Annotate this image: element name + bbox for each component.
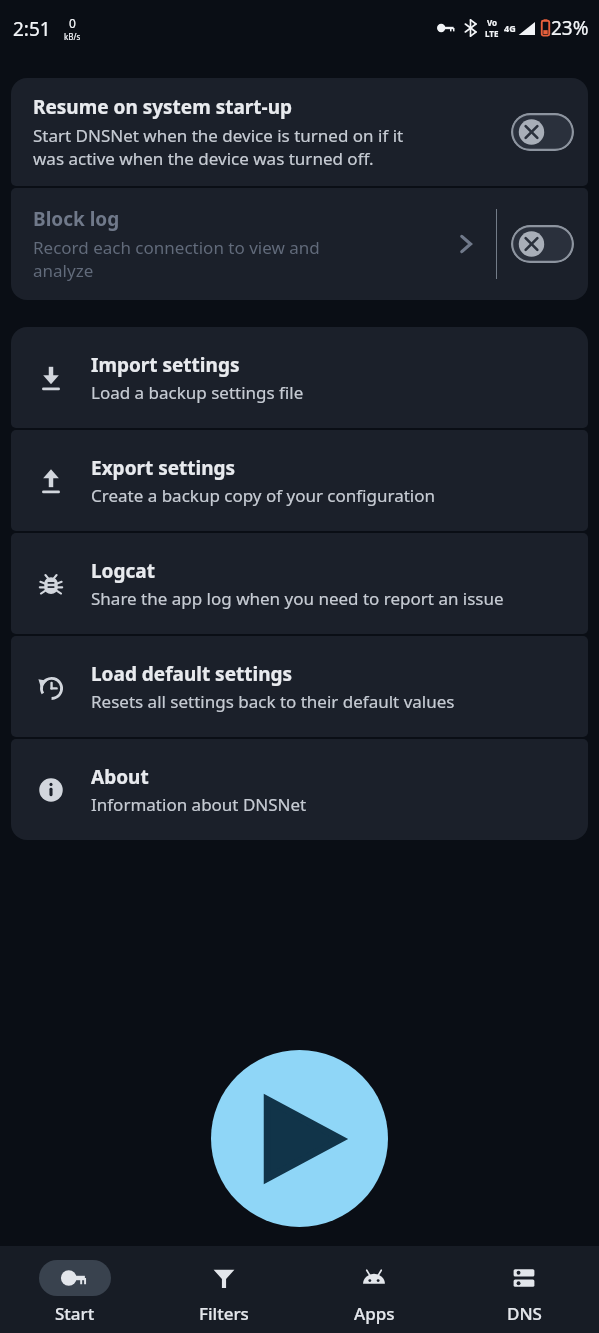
button[interactable]: Apps xyxy=(299,1254,449,1325)
staticText: Export settings xyxy=(91,455,236,481)
staticText: Load a backup settings file xyxy=(91,381,304,404)
button[interactable]: Start xyxy=(0,1254,149,1325)
button[interactable]: Logcat xyxy=(11,533,588,634)
staticText: Share the app log when you need to repor… xyxy=(91,587,504,610)
button[interactable]: Block log xyxy=(11,188,588,300)
staticText: Apps xyxy=(354,1302,395,1325)
staticText: 23% xyxy=(551,15,589,41)
staticText: 0 xyxy=(69,15,76,31)
button[interactable]: Export settings xyxy=(11,430,588,531)
button[interactable]: Load default settings xyxy=(11,636,588,737)
staticText: Information about DNSNet xyxy=(91,793,307,816)
staticText: Logcat xyxy=(91,558,155,584)
staticText: About xyxy=(91,764,149,790)
staticText: Start xyxy=(55,1302,95,1325)
staticText: Resume on system start-up xyxy=(33,94,292,120)
staticText: Filters xyxy=(199,1302,249,1325)
staticText: DNS xyxy=(507,1302,542,1325)
button[interactable]: Filters xyxy=(149,1254,299,1325)
button[interactable]: DNS xyxy=(449,1254,599,1325)
button[interactable]: Open block log xyxy=(449,227,483,261)
staticText: Resets all settings back to their defaul… xyxy=(91,690,455,713)
button[interactable]: Start DNSNet xyxy=(211,1050,388,1227)
staticText: kB/s xyxy=(64,31,81,42)
staticText: Load default settings xyxy=(91,661,293,687)
button[interactable]: Resume on system start-up xyxy=(11,78,588,186)
button[interactable]: Import settings xyxy=(11,327,588,428)
staticText: Import settings xyxy=(91,352,240,378)
staticText: 2:51 xyxy=(13,16,51,42)
staticText: Record each connection to view and analy… xyxy=(33,236,320,282)
button[interactable]: Toggle xyxy=(511,113,574,151)
staticText: Create a backup copy of your configurati… xyxy=(91,484,436,507)
staticText: LTE xyxy=(485,28,499,39)
staticText: Block log xyxy=(33,206,120,232)
staticText: 4G xyxy=(504,22,516,34)
button[interactable]: About xyxy=(11,739,588,840)
button[interactable]: Toggle xyxy=(511,225,574,263)
staticText: Start DNSNet when the device is turned o… xyxy=(33,124,404,170)
staticText: Vo xyxy=(487,17,498,28)
